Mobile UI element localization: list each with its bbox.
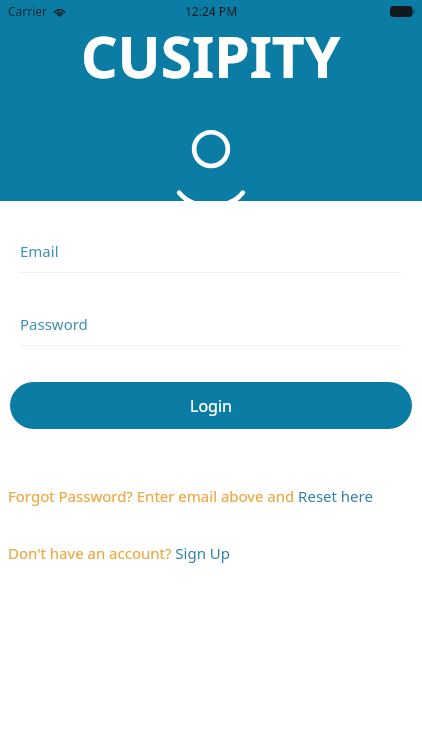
staticText: Login — [190, 395, 232, 417]
button[interactable]: Forgot Password? Enter email above and R… — [8, 486, 414, 506]
staticText: Forgot Password? Enter email above and R… — [8, 486, 373, 506]
button[interactable]: Password — [0, 303, 422, 346]
staticText: Don't have an account? Sign Up — [8, 543, 231, 563]
button[interactable]: Login — [10, 382, 412, 429]
staticText: 12:24 PM — [185, 3, 238, 19]
button[interactable]: Email — [0, 230, 422, 273]
staticText: Password — [20, 314, 88, 334]
staticText: Carrier — [8, 3, 48, 19]
staticText: CUSIPITY — [81, 17, 341, 95]
staticText: Email — [20, 241, 59, 261]
button[interactable]: Don't have an account? Sign Up — [8, 543, 414, 563]
